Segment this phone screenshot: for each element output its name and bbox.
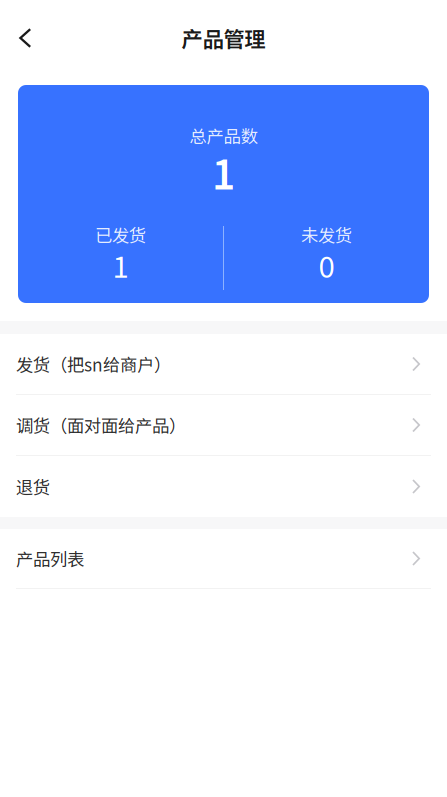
staticText: 0 bbox=[318, 244, 334, 286]
staticText: 总产品数 bbox=[189, 123, 257, 148]
staticText: 调货（面对面给产品） bbox=[16, 412, 186, 438]
staticText: 产品列表 bbox=[16, 546, 84, 571]
staticText: 1 bbox=[112, 244, 128, 286]
button[interactable]: 退货 bbox=[0, 456, 447, 517]
staticText: 1 bbox=[212, 143, 235, 201]
button[interactable]: 调货（面对面给产品） bbox=[0, 395, 447, 455]
staticText: 发货（把sn给商户） bbox=[16, 351, 171, 377]
button[interactable]: 发货（把sn给商户） bbox=[0, 334, 447, 394]
staticText: 未发货 bbox=[301, 222, 352, 247]
staticText: 已发货 bbox=[95, 222, 146, 247]
button[interactable]: 产品列表 bbox=[0, 529, 447, 588]
staticText: 产品管理 bbox=[181, 23, 265, 53]
staticText: 退货 bbox=[16, 474, 50, 499]
button[interactable]: Back bbox=[0, 20, 45, 56]
